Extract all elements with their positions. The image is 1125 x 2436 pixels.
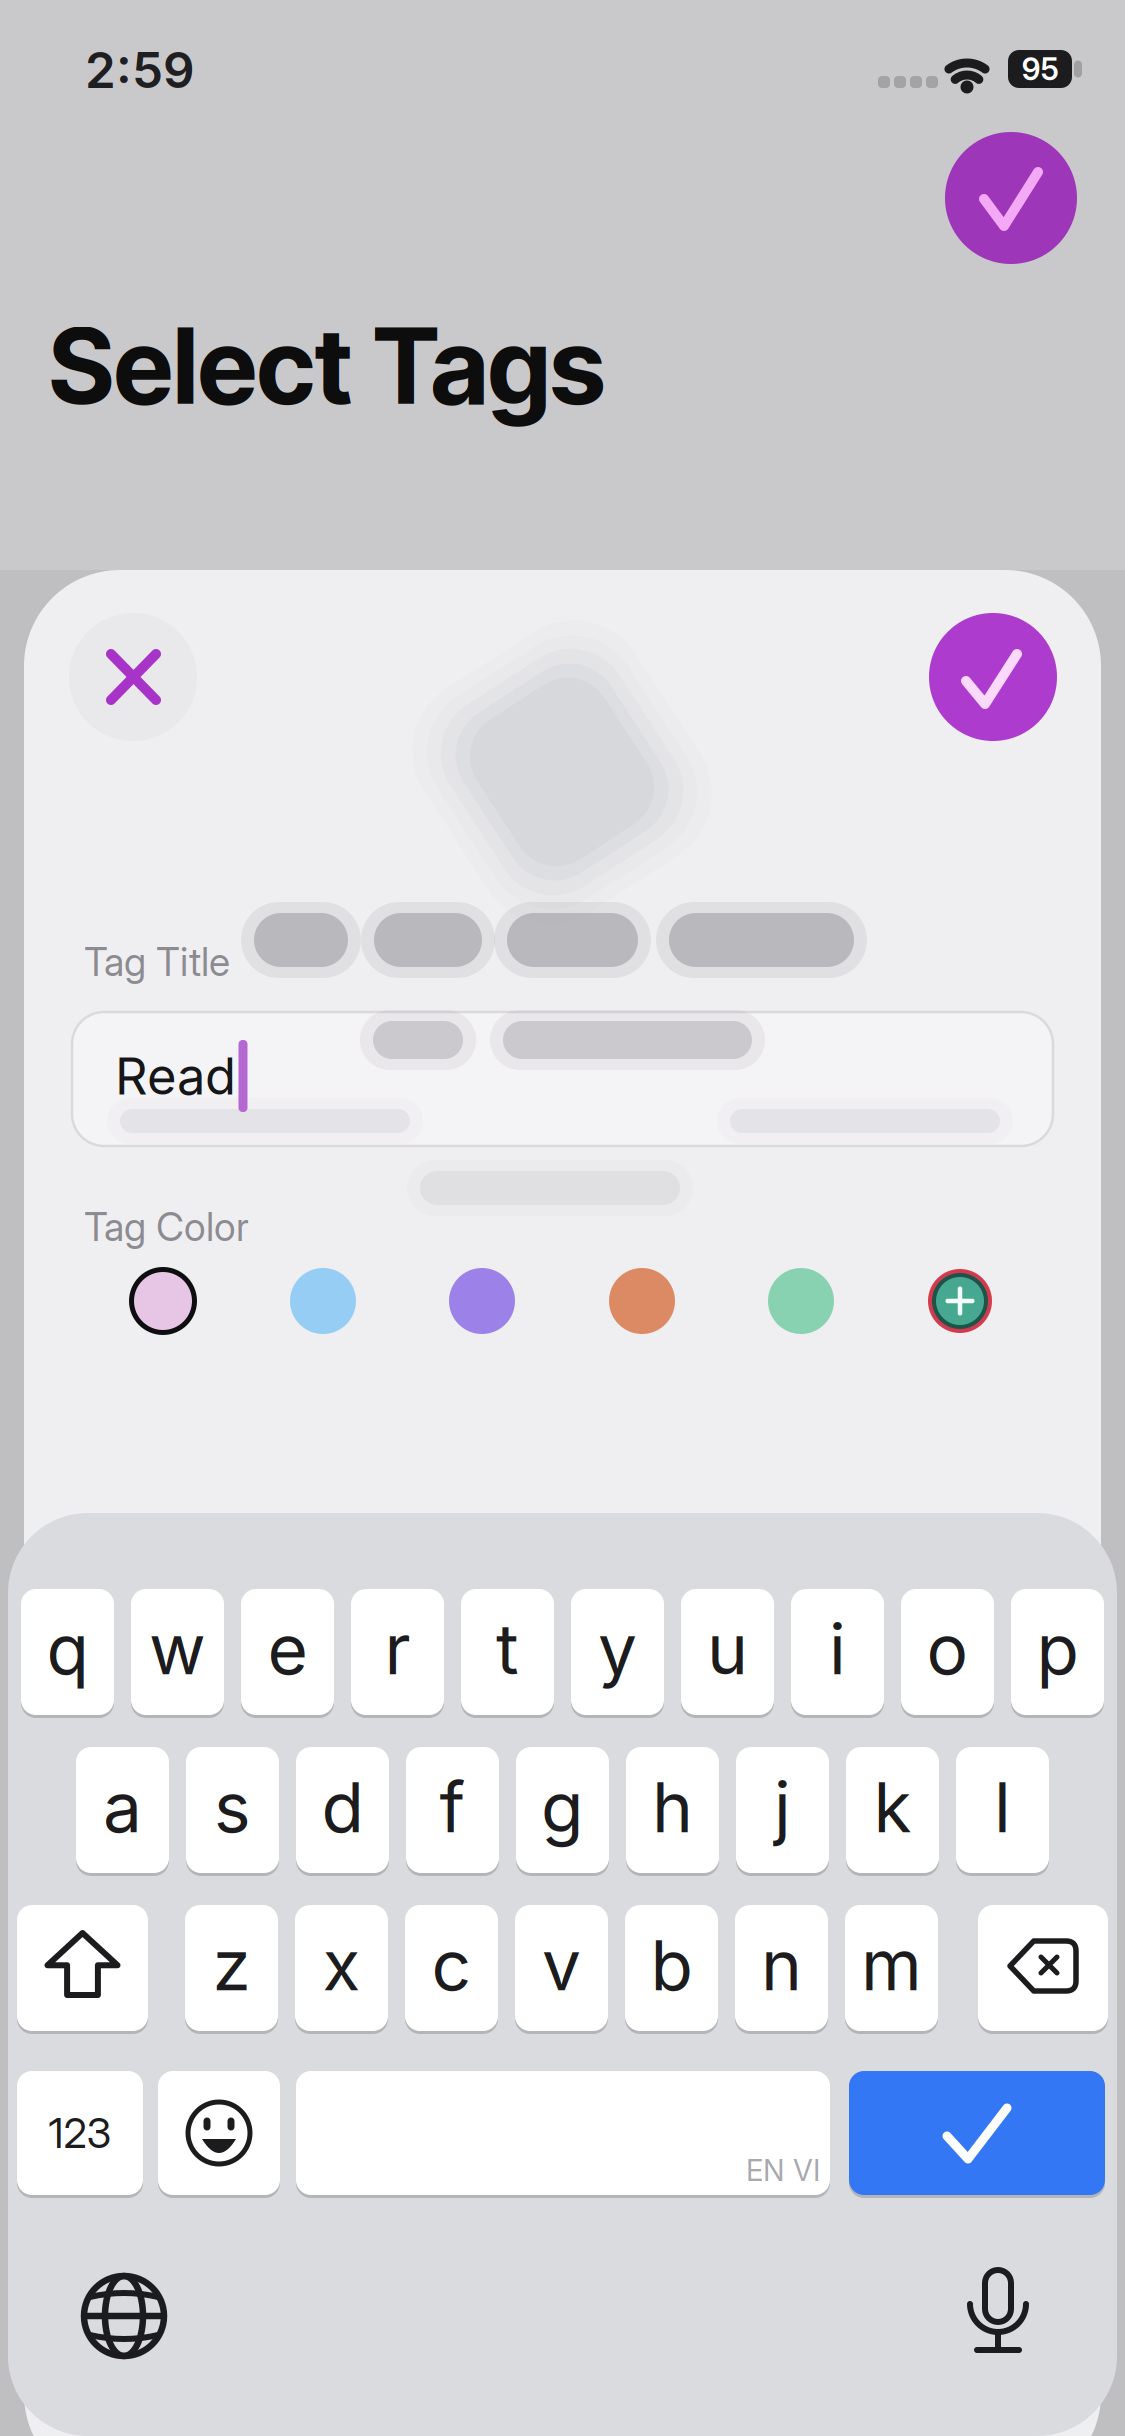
staticText: Read xyxy=(115,1045,236,1107)
staticText: g xyxy=(541,1765,584,1849)
staticText: Select Tags xyxy=(49,303,605,429)
button[interactable]: Numbers xyxy=(17,2069,143,2197)
staticText: f xyxy=(439,1765,465,1849)
button[interactable]: n xyxy=(735,1903,828,2033)
button[interactable]: e xyxy=(241,1587,334,1717)
staticText: 123 xyxy=(48,2108,111,2158)
button[interactable]: w xyxy=(131,1587,224,1717)
staticText: 2:59 xyxy=(85,40,195,100)
button[interactable]: Dictate xyxy=(950,2266,1046,2362)
staticText: c xyxy=(431,1923,471,2007)
staticText: n xyxy=(761,1923,802,2007)
button[interactable]: a xyxy=(76,1745,169,1875)
staticText: a xyxy=(103,1765,142,1849)
button[interactable]: l xyxy=(956,1745,1049,1875)
staticText: h xyxy=(652,1765,693,1849)
button[interactable]: k xyxy=(846,1745,939,1875)
button[interactable]: b xyxy=(625,1903,718,2033)
button[interactable]: Pink tag color xyxy=(130,1268,196,1334)
button[interactable]: Shift xyxy=(17,1903,148,2033)
button[interactable]: Delete xyxy=(978,1903,1108,2033)
button[interactable]: Done xyxy=(945,132,1077,264)
button[interactable]: r xyxy=(351,1587,444,1717)
staticText: EN VI xyxy=(746,2152,820,2188)
staticText: s xyxy=(214,1765,251,1849)
button[interactable]: Emoji xyxy=(158,2069,280,2197)
button[interactable]: o xyxy=(901,1587,994,1717)
button[interactable]: g xyxy=(516,1745,609,1875)
staticText: k xyxy=(873,1765,911,1849)
staticText: j xyxy=(774,1765,791,1849)
button[interactable]: h xyxy=(626,1745,719,1875)
staticText: b xyxy=(650,1923,692,2007)
button[interactable]: Tag Title xyxy=(72,1012,1053,1146)
staticText: r xyxy=(384,1607,410,1691)
button[interactable]: t xyxy=(461,1587,554,1717)
button[interactable]: v xyxy=(515,1903,608,2033)
button[interactable]: Mint tag color xyxy=(768,1268,834,1334)
button[interactable]: x xyxy=(295,1903,388,2033)
button[interactable]: u xyxy=(681,1587,774,1717)
button[interactable]: d xyxy=(296,1745,389,1875)
button[interactable]: Orange tag color xyxy=(609,1268,675,1334)
staticText: Tag Title xyxy=(84,939,230,985)
button[interactable]: y xyxy=(571,1587,664,1717)
staticText: Tag Color xyxy=(84,1204,249,1250)
staticText: u xyxy=(707,1607,748,1691)
staticText: o xyxy=(926,1607,968,1691)
staticText: m xyxy=(861,1923,922,2007)
staticText: z xyxy=(212,1923,250,2007)
button[interactable]: j xyxy=(736,1745,829,1875)
button[interactable]: m xyxy=(845,1903,938,2033)
staticText: 95 xyxy=(1021,50,1058,87)
button[interactable]: Space xyxy=(296,2069,830,2197)
button[interactable]: s xyxy=(186,1745,279,1875)
button[interactable]: Next keyboard xyxy=(76,2268,172,2364)
staticText: v xyxy=(542,1923,581,2007)
staticText: d xyxy=(321,1765,363,1849)
button[interactable]: Purple tag color xyxy=(449,1268,515,1334)
staticText: t xyxy=(496,1607,519,1691)
button[interactable]: z xyxy=(185,1903,278,2033)
button[interactable]: f xyxy=(406,1745,499,1875)
staticText: q xyxy=(46,1607,88,1691)
button[interactable]: c xyxy=(405,1903,498,2033)
button[interactable]: Save Tag xyxy=(929,613,1057,741)
button[interactable]: i xyxy=(791,1587,884,1717)
button[interactable]: Blue tag color xyxy=(290,1268,356,1334)
staticText: e xyxy=(267,1607,307,1691)
button[interactable]: q xyxy=(21,1587,114,1717)
button[interactable]: p xyxy=(1011,1587,1104,1717)
staticText: p xyxy=(1036,1607,1078,1691)
button[interactable]: Return xyxy=(849,2069,1105,2197)
button[interactable]: Close xyxy=(69,613,197,741)
staticText: i xyxy=(829,1607,846,1691)
staticText: w xyxy=(149,1607,206,1691)
staticText: x xyxy=(322,1923,360,2007)
staticText: l xyxy=(994,1765,1011,1849)
button[interactable]: Add custom tag color xyxy=(928,1269,992,1333)
staticText: y xyxy=(598,1607,637,1691)
